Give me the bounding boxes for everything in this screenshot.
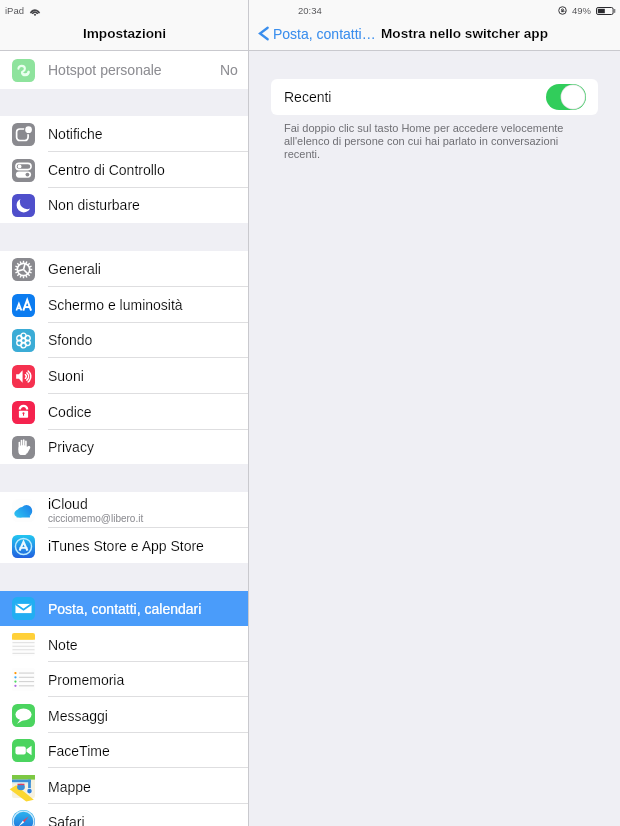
staticText: Promemoria: [48, 672, 125, 688]
staticText: Notifiche: [48, 126, 103, 142]
staticText: Mappe: [48, 779, 91, 795]
staticText: iCloud: [48, 496, 88, 512]
staticText: 20:34: [298, 5, 322, 16]
staticText: Schermo e luminosità: [48, 297, 183, 313]
staticText: FaceTime: [48, 743, 110, 759]
button[interactable]: Note: [0, 627, 249, 662]
button[interactable]: Promemoria: [0, 662, 249, 697]
staticText: Suoni: [48, 368, 84, 384]
staticText: Posta, contatti…: [273, 26, 376, 42]
button[interactable]: Indietro: [258, 25, 376, 42]
staticText: Non disturbare: [48, 197, 140, 213]
staticText: Recenti: [284, 89, 332, 105]
staticText: Safari: [48, 814, 85, 826]
staticText: 49%: [572, 5, 592, 16]
staticText: iTunes Store e App Store: [48, 538, 204, 554]
staticText: Note: [48, 637, 78, 653]
staticText: Messaggi: [48, 708, 108, 724]
button[interactable]: FaceTime: [0, 733, 249, 768]
staticText: Hotspot personale: [48, 62, 162, 78]
staticText: Privacy: [48, 439, 94, 455]
button[interactable]: Centro di Controllo: [0, 152, 249, 188]
button[interactable]: Safari: [0, 804, 249, 826]
staticText: Generali: [48, 261, 101, 277]
staticText: Fai doppio clic sul tasto Home per acced…: [284, 122, 572, 161]
button[interactable]: Privacy: [0, 429, 249, 465]
button[interactable]: Suoni: [0, 358, 249, 394]
button[interactable]: Schermo e luminosità: [0, 287, 249, 323]
button[interactable]: Non disturbare: [0, 187, 249, 223]
staticText: cicciomemo@libero.it: [48, 513, 144, 524]
button[interactable]: Codice: [0, 394, 249, 430]
staticText: Posta, contatti, calendari: [48, 601, 202, 617]
staticText: Sfondo: [48, 332, 93, 348]
staticText: No: [220, 62, 238, 78]
button[interactable]: Generali: [0, 251, 249, 287]
button[interactable]: Messaggi: [0, 698, 249, 733]
button[interactable]: Mappe: [0, 769, 249, 804]
staticText: Codice: [48, 404, 92, 420]
staticText: Centro di Controllo: [48, 162, 165, 178]
button[interactable]: iCloud: [0, 492, 249, 528]
button[interactable]: Hotspot personale: [0, 51, 249, 89]
button[interactable]: iTunes Store e App Store: [0, 528, 249, 564]
button[interactable]: Recenti: [271, 79, 598, 115]
button[interactable]: Sfondo: [0, 322, 249, 358]
staticText: Impostazioni: [83, 26, 167, 41]
staticText: Mostra nello switcher app: [381, 26, 548, 41]
staticText: iPad: [5, 5, 25, 16]
button[interactable]: Notifiche: [0, 116, 249, 152]
button[interactable]: Posta, contatti, calendari: [0, 591, 249, 626]
